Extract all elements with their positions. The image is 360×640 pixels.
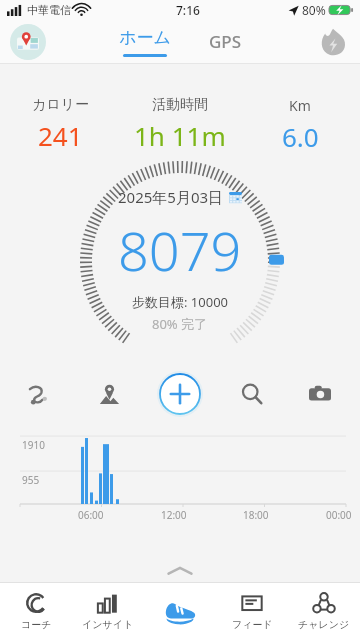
- staticText: 80% 完了: [152, 315, 208, 333]
- button[interactable]: チャレンジ: [288, 582, 360, 640]
- button[interactable]: フィード: [216, 582, 288, 640]
- button[interactable]: Add activity: [157, 371, 203, 417]
- staticText: 活動時間: [152, 96, 208, 114]
- staticText: 955: [22, 473, 40, 487]
- button[interactable]: Activity burn: [318, 27, 348, 57]
- button[interactable]: Search: [232, 374, 272, 414]
- staticText: 2025年5月03日: [118, 187, 224, 207]
- button[interactable]: [144, 582, 216, 640]
- button[interactable]: コーチ: [0, 582, 72, 640]
- staticText: 1910: [22, 438, 45, 452]
- button[interactable]: GPS: [201, 26, 250, 57]
- staticText: 00:00: [326, 508, 352, 522]
- button[interactable]: インサイト: [72, 582, 144, 640]
- staticText: コーチ: [21, 618, 52, 631]
- staticText: チャレンジ: [298, 618, 350, 631]
- staticText: フィード: [232, 618, 273, 631]
- staticText: 06:00: [78, 508, 104, 522]
- button[interactable]: Calendar: [229, 191, 242, 204]
- button[interactable]: Camera: [300, 374, 340, 414]
- staticText: インサイト: [82, 618, 134, 631]
- staticText: 步数目標: 10000: [132, 293, 229, 311]
- button[interactable]: ホーム: [111, 27, 179, 57]
- staticText: GPS: [209, 30, 242, 53]
- staticText: 8079: [118, 213, 242, 287]
- button[interactable]: Expand: [0, 560, 360, 582]
- button[interactable]: カロリー: [0, 96, 120, 153]
- staticText: 241: [38, 118, 83, 153]
- staticText: 80%: [302, 2, 326, 18]
- staticText: 12:00: [161, 508, 187, 522]
- staticText: 1h 11m: [134, 118, 226, 153]
- button[interactable]: Profile map: [10, 24, 46, 60]
- staticText: 18:00: [243, 508, 269, 522]
- button[interactable]: Map location: [89, 374, 129, 414]
- button[interactable]: Km: [240, 96, 360, 154]
- staticText: 6.0: [282, 119, 319, 154]
- staticText: Km: [289, 96, 311, 115]
- staticText: ホーム: [119, 27, 171, 48]
- button[interactable]: Route: [20, 374, 60, 414]
- staticText: 中華電信: [27, 3, 71, 17]
- button[interactable]: 活動時間: [120, 96, 240, 153]
- staticText: 7:16: [176, 2, 200, 18]
- staticText: カロリー: [32, 96, 89, 114]
